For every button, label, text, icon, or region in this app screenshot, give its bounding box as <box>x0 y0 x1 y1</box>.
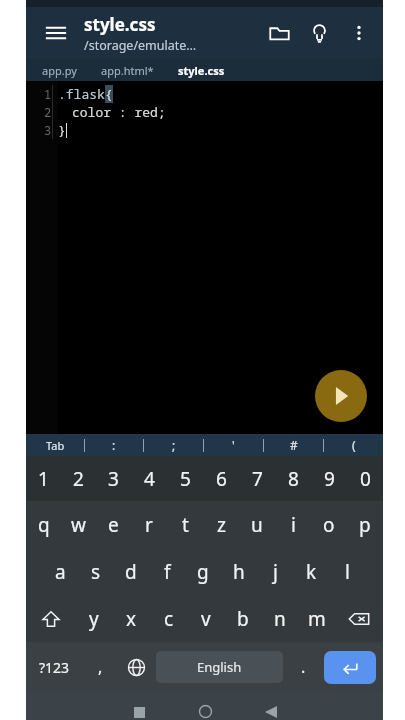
staticText: 1 <box>38 466 49 492</box>
staticText: 7 <box>252 466 263 492</box>
staticText: 9 <box>324 466 335 492</box>
staticText: w <box>71 512 86 538</box>
staticText: } <box>58 121 66 139</box>
button[interactable]: 3 <box>96 456 131 501</box>
button[interactable]: 4 <box>131 456 167 501</box>
button[interactable]: l <box>329 548 365 595</box>
button[interactable]: c <box>150 595 187 642</box>
button[interactable]: : <box>85 434 143 456</box>
staticText: v <box>201 606 211 632</box>
button[interactable]: p <box>347 501 383 548</box>
button[interactable]: 5 <box>167 456 203 501</box>
staticText: 2 <box>44 104 52 120</box>
button[interactable]: 9 <box>311 456 347 501</box>
button[interactable]: j <box>257 548 293 595</box>
staticText: q <box>38 512 50 538</box>
staticText: i <box>291 512 296 538</box>
button[interactable]: English <box>156 651 283 683</box>
staticText: u <box>251 512 263 538</box>
button[interactable]: Change language <box>118 642 154 692</box>
button[interactable]: v <box>187 595 224 642</box>
button[interactable]: style.css <box>176 61 227 80</box>
staticText: d <box>125 559 137 585</box>
button[interactable]: 2 <box>61 456 96 501</box>
button[interactable]: o <box>311 501 347 548</box>
staticText: 5 <box>180 466 191 492</box>
button[interactable]: ( <box>324 434 383 456</box>
button[interactable]: y <box>75 595 113 642</box>
button[interactable]: e <box>96 501 131 548</box>
button[interactable]: Open file browser <box>259 13 299 53</box>
staticText: 3 <box>108 466 119 492</box>
button[interactable]: Open navigation menu <box>34 11 78 55</box>
button[interactable]: i <box>275 501 311 548</box>
button[interactable]: 7 <box>239 456 275 501</box>
staticText: b <box>237 606 249 632</box>
button[interactable]: ' <box>204 434 263 456</box>
staticText: z <box>217 512 226 538</box>
button[interactable]: Recents <box>106 692 172 720</box>
staticText: l <box>345 559 350 585</box>
button[interactable]: app.py <box>40 61 79 80</box>
button[interactable]: Backspace <box>335 595 383 642</box>
staticText: .flask <box>58 85 105 103</box>
staticText: e <box>108 512 119 538</box>
button[interactable]: ; <box>144 434 203 456</box>
button[interactable]: t <box>167 501 203 548</box>
button[interactable]: 0 <box>347 456 383 501</box>
staticText: English <box>197 658 242 676</box>
button[interactable]: , <box>82 642 118 692</box>
staticText: # <box>290 437 298 453</box>
button[interactable]: x <box>113 595 150 642</box>
staticText: ; <box>172 437 176 453</box>
button[interactable]: 8 <box>275 456 311 501</box>
button[interactable]: 1 <box>26 456 61 501</box>
button[interactable]: 6 <box>203 456 239 501</box>
button[interactable]: # <box>264 434 323 456</box>
staticText: 6 <box>216 466 227 492</box>
button[interactable]: g <box>185 548 221 595</box>
staticText: 8 <box>288 466 299 492</box>
button[interactable]: Shift <box>26 595 75 642</box>
button[interactable]: Tab <box>26 434 84 456</box>
staticText: Tab <box>46 438 65 453</box>
staticText: app.py <box>42 63 77 78</box>
button[interactable]: app.html* <box>99 61 156 80</box>
button[interactable]: Show hints <box>299 13 339 53</box>
staticText: color : red; <box>72 103 166 121</box>
button[interactable]: Home <box>172 692 238 720</box>
button[interactable]: Back <box>238 692 304 720</box>
staticText: 2 <box>73 466 84 492</box>
button[interactable]: a <box>43 548 78 595</box>
staticText: k <box>306 559 317 585</box>
button[interactable]: n <box>261 595 298 642</box>
button[interactable]: style.css <box>84 13 259 54</box>
staticText: o <box>323 512 335 538</box>
staticText: : <box>112 437 116 453</box>
button[interactable]: r <box>131 501 167 548</box>
staticText: style.css <box>178 63 225 78</box>
staticText: t <box>182 512 189 538</box>
button[interactable]: z <box>203 501 239 548</box>
button[interactable]: w <box>61 501 96 548</box>
staticText: s <box>91 559 101 585</box>
staticText: 1 <box>44 86 52 102</box>
button[interactable]: More options <box>339 13 379 53</box>
button[interactable]: h <box>221 548 257 595</box>
button[interactable]: m <box>298 595 335 642</box>
staticText: ( <box>352 437 356 453</box>
staticText: 3 <box>44 122 52 138</box>
button[interactable]: Enter <box>324 651 376 684</box>
button[interactable]: s <box>78 548 113 595</box>
button[interactable]: . <box>285 642 321 692</box>
staticText: y <box>89 606 99 632</box>
button[interactable]: Run <box>315 370 367 422</box>
button[interactable]: b <box>224 595 261 642</box>
button[interactable]: d <box>113 548 149 595</box>
button[interactable]: ?123 <box>26 642 82 692</box>
staticText: a <box>55 559 66 585</box>
button[interactable]: f <box>149 548 185 595</box>
button[interactable]: u <box>239 501 275 548</box>
button[interactable]: k <box>293 548 329 595</box>
button[interactable]: q <box>26 501 61 548</box>
